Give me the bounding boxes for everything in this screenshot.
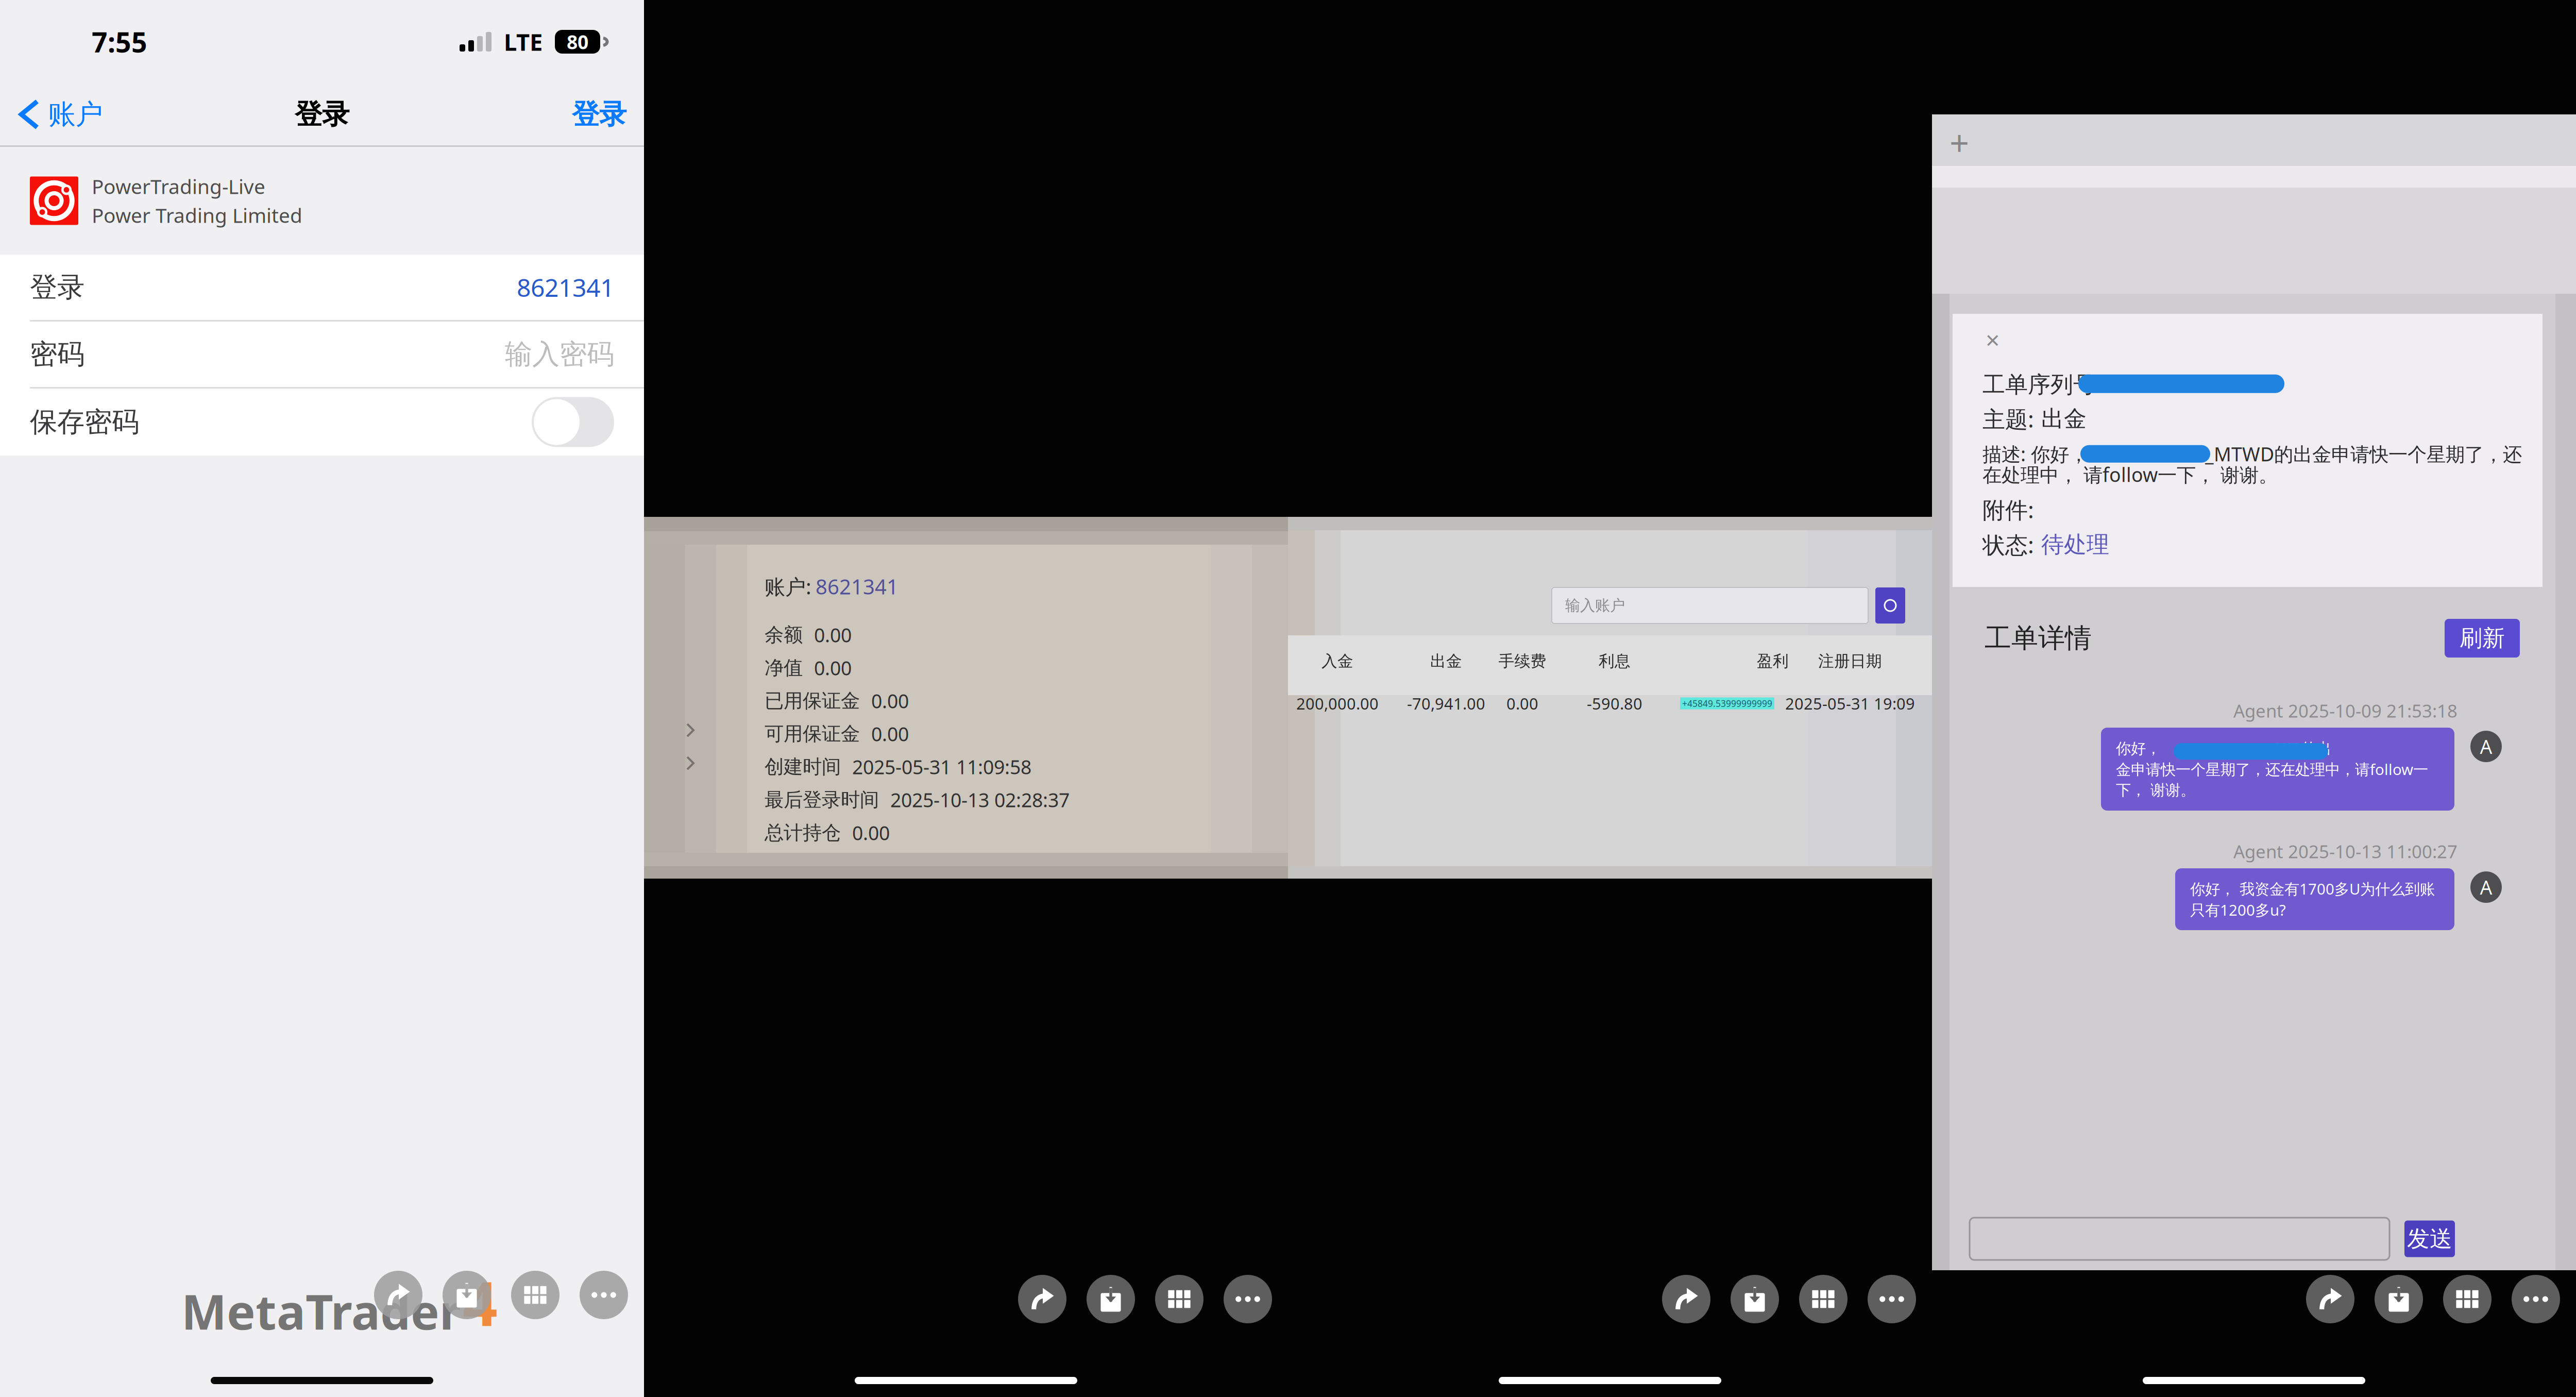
- staticText: A: [2480, 734, 2492, 759]
- staticText: 0.00: [871, 721, 909, 747]
- staticText: 2025-10-13 02:28:37: [890, 787, 1070, 813]
- staticText: 登录: [295, 97, 349, 131]
- staticText: 待处理: [2041, 531, 2109, 558]
- button[interactable]: 账户: [0, 86, 112, 143]
- staticText: 最后登录时间: [765, 788, 879, 812]
- staticText: 总计持仓: [765, 821, 841, 845]
- button[interactable]: Save image: [443, 1271, 491, 1319]
- staticText: 200,000.00: [1296, 693, 1379, 714]
- button[interactable]: Share: [2306, 1275, 2354, 1323]
- staticText: 0.00: [814, 655, 852, 681]
- staticText: 创建时间: [765, 755, 841, 779]
- staticText: 余额: [765, 623, 803, 647]
- staticText: 8621341: [816, 573, 899, 600]
- staticText: Agent 2025-10-13 11:00:27: [2233, 839, 2458, 863]
- staticText: 登录: [572, 97, 626, 131]
- staticText: 状态:: [1982, 529, 2034, 560]
- staticText: 描述: 你好， -00678_MTWD的出金申请快一个星期了，还: [1982, 441, 2522, 467]
- button[interactable]: 刷新: [2445, 619, 2520, 658]
- staticText: 发送: [2407, 1225, 2452, 1253]
- staticText: 0.00: [871, 688, 909, 714]
- staticText: 可用保证金: [765, 722, 860, 746]
- staticText: 入金: [1321, 651, 1353, 671]
- staticText: 附件:: [1982, 494, 2034, 525]
- staticText: 输入账户: [1565, 596, 1625, 615]
- button[interactable]: 保存密码: [0, 389, 644, 456]
- staticText: 出金: [1430, 651, 1462, 671]
- button[interactable]: More: [1224, 1275, 1272, 1323]
- button[interactable]: Save image: [1087, 1275, 1135, 1323]
- staticText: MetaTrader: [181, 1279, 461, 1343]
- staticText: 主题:: [1982, 404, 2034, 434]
- staticText: +: [1950, 120, 1969, 166]
- staticText: 0.00: [1506, 693, 1538, 714]
- button[interactable]: 登录: [554, 86, 644, 143]
- button[interactable]: More: [1868, 1275, 1916, 1323]
- button[interactable]: More: [580, 1271, 628, 1319]
- staticText: 下， 谢谢。: [2116, 781, 2195, 800]
- button[interactable]: All photos: [1799, 1275, 1848, 1323]
- button[interactable]: All photos: [2443, 1275, 2492, 1323]
- staticText: 登录: [30, 270, 84, 304]
- staticText: 刷新: [2460, 624, 2505, 652]
- button[interactable]: All photos: [511, 1271, 560, 1319]
- staticText: 金申请快一个星期了，还在处理中，请follow一: [2116, 759, 2428, 779]
- button[interactable]: 发送: [2404, 1221, 2455, 1257]
- staticText: -70,941.00: [1407, 693, 1485, 714]
- button[interactable]: All photos: [1155, 1275, 1204, 1323]
- staticText: 在处理中， 请follow一下， 谢谢。: [1982, 462, 2278, 487]
- staticText: A: [2480, 874, 2492, 900]
- staticText: 工单序列号:: [1982, 369, 2102, 399]
- staticText: 手续费: [1498, 651, 1546, 671]
- staticText: 只有1200多u?: [2190, 900, 2286, 920]
- button[interactable]: Save image: [1731, 1275, 1779, 1323]
- staticText: -590.80: [1587, 693, 1642, 714]
- staticText: 密码: [30, 337, 84, 371]
- staticText: Power Trading Limited: [92, 202, 302, 228]
- staticText: 盈利: [1757, 651, 1789, 671]
- staticText: 利息: [1599, 651, 1631, 671]
- staticText: 注册日期: [1818, 651, 1882, 671]
- staticText: 4: [463, 1262, 498, 1343]
- staticText: 工单详情: [1985, 622, 2092, 655]
- button[interactable]: 登录: [0, 255, 644, 320]
- staticText: ×: [1986, 323, 1999, 356]
- staticText: +45849.53999999999: [1682, 697, 1772, 709]
- staticText: 8621341: [517, 271, 614, 304]
- staticText: 你好， 我资金有1700多U为什么到账: [2190, 879, 2435, 899]
- staticText: 保存密码: [30, 405, 139, 439]
- staticText: 2025-05-31 11:09:58: [852, 754, 1031, 780]
- button[interactable]: Share: [374, 1271, 422, 1319]
- staticText: 净值: [765, 656, 803, 680]
- staticText: PowerTrading-Live: [92, 173, 265, 199]
- staticText: 出金: [2041, 405, 2087, 433]
- staticText: 7:55: [92, 23, 147, 60]
- staticText: 2025-05-31 19:09: [1785, 693, 1915, 714]
- staticText: 0.00: [814, 622, 852, 648]
- button[interactable]: Share: [1018, 1275, 1066, 1323]
- staticText: Agent 2025-10-09 21:53:18: [2233, 699, 2458, 722]
- staticText: 输入密码: [505, 337, 614, 371]
- button[interactable]: Share: [1662, 1275, 1710, 1323]
- button[interactable]: 密码: [0, 322, 644, 387]
- staticText: 已用保证金: [765, 689, 860, 713]
- staticText: 0.00: [852, 820, 890, 846]
- staticText: 账户: [48, 97, 103, 131]
- staticText: LTE: [504, 26, 543, 57]
- staticText: 账户:: [765, 573, 811, 600]
- button[interactable]: More: [2512, 1275, 2560, 1323]
- staticText: 你好， WD的出: [2116, 738, 2331, 758]
- staticText: 80: [567, 29, 588, 55]
- button[interactable]: Save image: [2375, 1275, 2423, 1323]
